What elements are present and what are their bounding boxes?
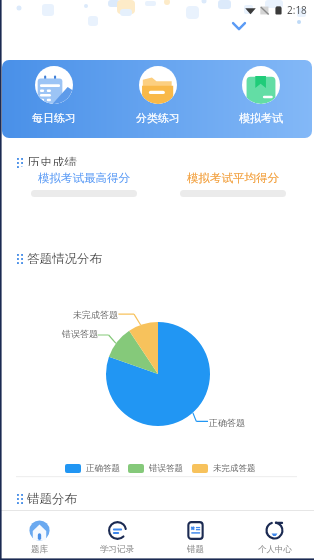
staticText: 未完成答题 — [213, 463, 256, 474]
staticText: 模拟考试平均得分 — [187, 171, 279, 185]
staticText: 答题情况分布 — [27, 251, 102, 267]
staticText: 分类练习 — [136, 111, 180, 125]
staticText: 错题 — [187, 544, 204, 555]
staticText: 模拟考试最高得分 — [38, 171, 130, 185]
staticText: 模拟考试 — [239, 111, 283, 125]
staticText: 错题分布 — [27, 491, 77, 507]
button[interactable]: 模拟考试 — [209, 60, 312, 138]
button[interactable]: Collapse — [230, 18, 248, 36]
staticText: 2:18 — [287, 3, 307, 17]
staticText: 每日练习 — [32, 111, 76, 125]
staticText: 学习记录 — [100, 544, 134, 555]
button[interactable]: 模拟考试平均得分 — [167, 166, 299, 237]
staticText: 正确答题 — [86, 463, 120, 474]
staticText: 题库 — [31, 544, 48, 555]
staticText: 错误答题 — [62, 328, 98, 339]
staticText: 错误答题 — [149, 463, 183, 474]
staticText: 未完成答题 — [73, 309, 118, 320]
button[interactable]: 学习记录 — [78, 512, 156, 560]
button[interactable]: 错题 — [156, 512, 235, 560]
staticText: 正确答题 — [209, 417, 245, 428]
button[interactable]: 模拟考试最高得分 — [18, 166, 150, 237]
button[interactable]: 每日练习 — [2, 60, 106, 138]
button[interactable]: 分类练习 — [106, 60, 209, 138]
staticText: 历史成绩 — [27, 155, 77, 171]
button[interactable]: 题库 — [0, 512, 78, 560]
button[interactable]: 个人中心 — [235, 512, 314, 560]
staticText: 个人中心 — [258, 544, 292, 555]
